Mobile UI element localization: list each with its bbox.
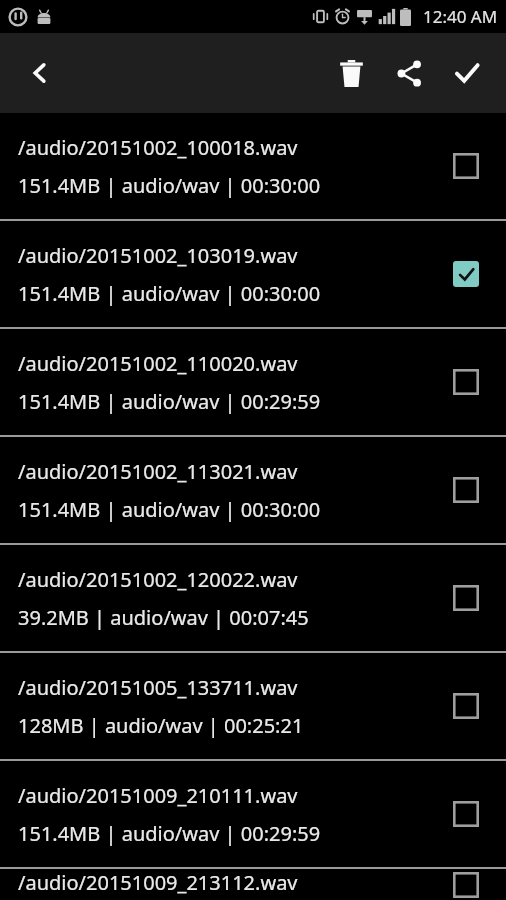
staticText: /audio/20151002_103019.wav xyxy=(18,242,298,269)
button[interactable]: Share xyxy=(380,44,438,102)
button[interactable]: /audio/20151002_110020.wav xyxy=(0,329,506,435)
button[interactable]: Confirm xyxy=(438,44,496,102)
button[interactable]: Not selected xyxy=(442,142,490,190)
staticText: 12:40 AM xyxy=(423,5,498,28)
button[interactable]: /audio/20151002_103019.wav xyxy=(0,221,506,327)
button[interactable]: Not selected xyxy=(442,869,490,900)
staticText: 151.4MB | audio/wav | 00:29:59 xyxy=(18,388,321,415)
staticText: 39.2MB | audio/wav | 00:07:45 xyxy=(18,604,309,631)
button[interactable]: /audio/20151002_113021.wav xyxy=(0,437,506,543)
button[interactable]: /audio/20151009_213112.wav xyxy=(0,869,506,900)
staticText: 151.4MB | audio/wav | 00:30:00 xyxy=(18,172,321,199)
staticText: /audio/20151009_210111.wav xyxy=(18,782,298,809)
staticText: /audio/20151005_133711.wav xyxy=(18,674,298,701)
button[interactable]: /audio/20151002_120022.wav xyxy=(0,545,506,651)
button[interactable]: Not selected xyxy=(442,466,490,514)
button[interactable]: Not selected xyxy=(442,790,490,838)
staticText: /audio/20151002_100018.wav xyxy=(18,134,298,161)
staticText: 128MB | audio/wav | 00:25:21 xyxy=(18,712,304,739)
button[interactable]: Selected xyxy=(442,250,490,298)
button[interactable]: Back xyxy=(14,47,66,99)
staticText: /audio/20151009_213112.wav xyxy=(18,869,298,896)
staticText: /audio/20151002_110020.wav xyxy=(18,350,298,377)
button[interactable]: Not selected xyxy=(442,358,490,406)
button[interactable]: /audio/20151002_100018.wav xyxy=(0,113,506,219)
staticText: 151.4MB | audio/wav | 00:30:00 xyxy=(18,280,321,307)
button[interactable]: Not selected xyxy=(442,574,490,622)
button[interactable]: /audio/20151005_133711.wav xyxy=(0,653,506,759)
staticText: 151.4MB | audio/wav | 00:30:00 xyxy=(18,496,321,523)
staticText: 151.4MB | audio/wav | 00:29:59 xyxy=(18,820,321,847)
staticText: /audio/20151002_113021.wav xyxy=(18,458,298,485)
button[interactable]: Not selected xyxy=(442,682,490,730)
button[interactable]: /audio/20151009_210111.wav xyxy=(0,761,506,867)
staticText: /audio/20151002_120022.wav xyxy=(18,566,298,593)
button[interactable]: Delete xyxy=(322,44,380,102)
